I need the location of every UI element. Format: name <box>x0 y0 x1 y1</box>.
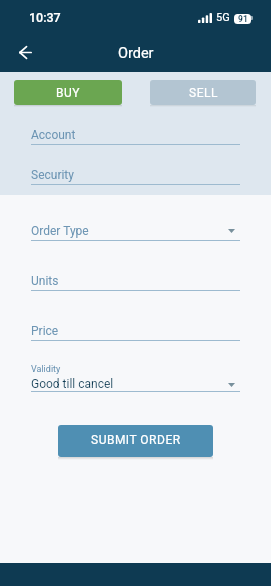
button[interactable]: Order Type <box>31 220 240 241</box>
staticText: Security <box>31 168 74 182</box>
staticText: Good till cancel <box>31 377 114 391</box>
staticText: Account <box>31 128 76 142</box>
button[interactable]: Validity <box>31 361 240 392</box>
staticText: Price <box>31 324 59 338</box>
button[interactable]: SUBMIT ORDER <box>58 425 213 457</box>
staticText: Units <box>31 274 59 288</box>
staticText: SUBMIT ORDER <box>91 433 181 447</box>
button[interactable]: SELL <box>150 80 256 105</box>
staticText: Order Type <box>31 224 89 238</box>
button[interactable]: Back <box>11 38 40 67</box>
staticText: SELL <box>189 86 218 100</box>
button[interactable]: Account <box>31 124 240 145</box>
staticText: 91 <box>238 14 248 24</box>
button[interactable]: Security <box>31 164 240 185</box>
staticText: Validity <box>31 364 61 375</box>
staticText: Order <box>118 45 154 62</box>
staticText: BUY <box>56 86 80 100</box>
staticText: 10:37 <box>29 10 61 25</box>
staticText: 5G <box>216 11 230 24</box>
button[interactable]: BUY <box>14 80 122 105</box>
button[interactable]: Units <box>31 270 240 291</box>
button[interactable]: Price <box>31 320 240 341</box>
